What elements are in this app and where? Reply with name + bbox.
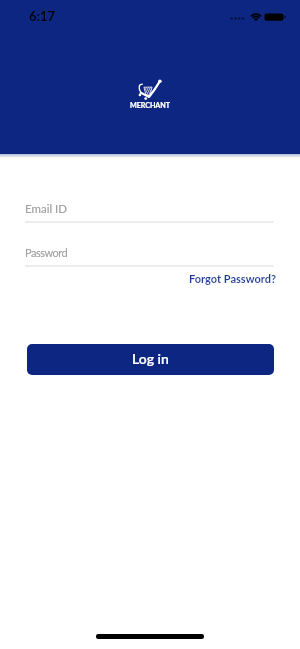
staticText: Password <box>25 246 68 259</box>
staticText: 6:17 <box>29 8 55 24</box>
button[interactable]: Log in <box>27 344 274 375</box>
staticText: Forgot Password? <box>189 272 276 285</box>
staticText: Email ID <box>25 202 68 216</box>
button[interactable] <box>25 198 274 224</box>
button[interactable]: Forgot Password? <box>189 272 276 285</box>
staticText: MERCHANT <box>0 101 300 110</box>
button[interactable] <box>25 242 274 268</box>
staticText: Log in <box>132 350 169 367</box>
